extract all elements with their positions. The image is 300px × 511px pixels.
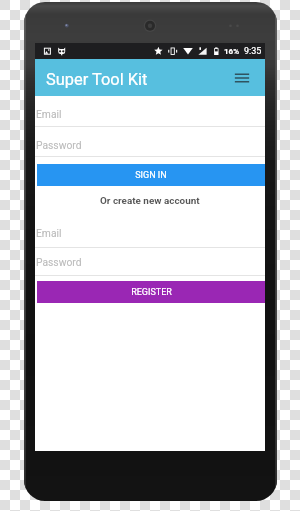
button[interactable]: Or create new account [35, 185, 265, 215]
button[interactable]: Password [35, 126, 265, 157]
staticText: Or create new account [100, 195, 200, 207]
button[interactable]: Password [35, 247, 265, 276]
staticText: 9:35 [244, 46, 262, 57]
button[interactable]: Menu [232, 68, 252, 88]
button[interactable]: Email [35, 95, 265, 127]
staticText: 16% [224, 47, 240, 56]
staticText: Password [36, 256, 82, 268]
staticText: Email [36, 108, 62, 120]
staticText: Email [36, 227, 62, 239]
button[interactable]: Email [35, 215, 265, 248]
button[interactable]: REGISTER [37, 281, 265, 303]
button[interactable]: SIGN IN [37, 164, 265, 186]
staticText: SIGN IN [135, 170, 167, 181]
staticText: REGISTER [131, 287, 172, 298]
staticText: Password [36, 139, 82, 151]
staticText: Super Tool Kit [46, 70, 148, 89]
